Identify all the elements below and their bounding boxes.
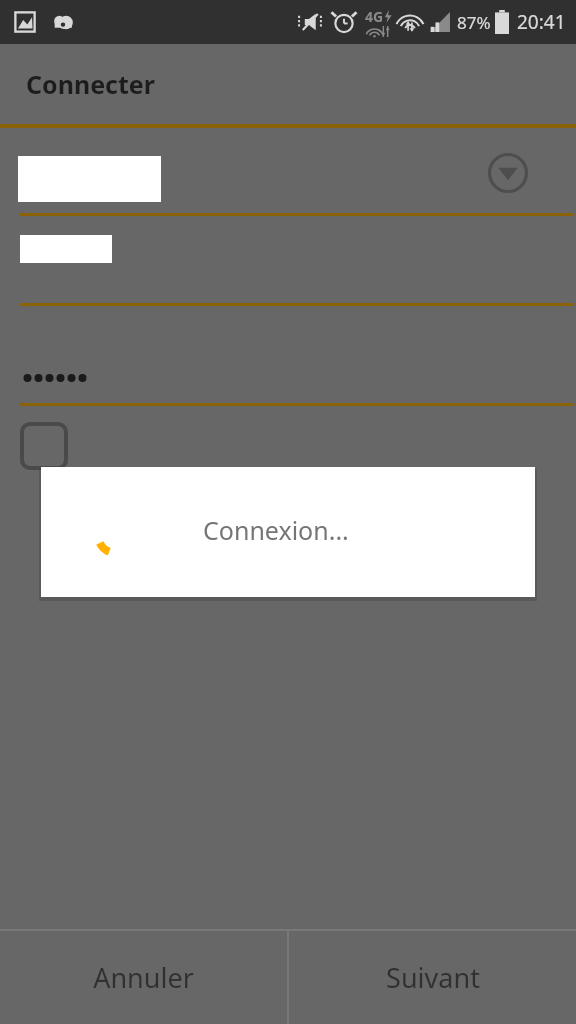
staticText: Connexion... (203, 513, 349, 547)
staticText: 4G (365, 7, 384, 26)
staticText: Suivant (386, 959, 480, 996)
button[interactable]: Annuler (0, 931, 287, 1024)
button[interactable]: Case à cocher (20, 422, 68, 470)
staticText: Connecter (26, 67, 155, 101)
button[interactable]: Ouvrir la liste (486, 151, 530, 195)
staticText: 20:41 (517, 9, 566, 35)
staticText: 87% (457, 11, 491, 34)
button[interactable]: Suivant (289, 931, 576, 1024)
staticText: Annuler (93, 959, 194, 996)
